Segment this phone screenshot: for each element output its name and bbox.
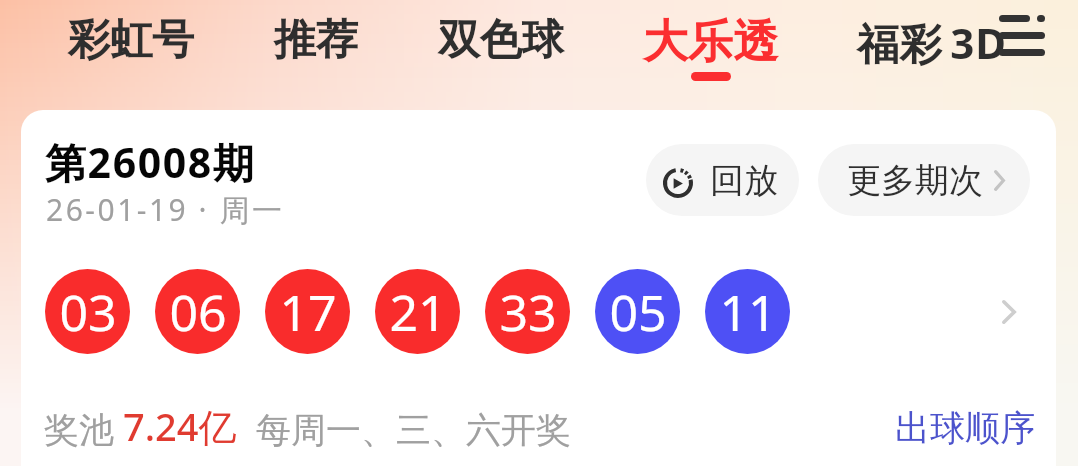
button[interactable]: 双色球 xyxy=(428,12,574,69)
staticText: 26-01-19 · 周一 xyxy=(46,189,285,230)
button[interactable]: More details xyxy=(979,270,1039,354)
staticText: 福彩 3D xyxy=(857,14,1007,71)
staticText: 03 xyxy=(59,278,117,346)
staticText: 奖池 xyxy=(44,408,114,452)
staticText: 05 xyxy=(609,278,667,346)
staticText: 06 xyxy=(169,278,227,346)
staticText: 更多期次 xyxy=(847,159,983,202)
staticText: 推荐 xyxy=(274,14,358,67)
staticText: 33 xyxy=(499,278,557,346)
staticText: 17 xyxy=(279,278,337,346)
staticText: 大乐透 xyxy=(643,14,778,71)
staticText: 每周一、三、六开奖 xyxy=(256,408,571,452)
button[interactable]: 推荐 xyxy=(264,12,368,69)
button[interactable]: 彩虹号 xyxy=(58,12,204,69)
button[interactable]: 出球顺序 xyxy=(881,396,1049,460)
button[interactable]: 更多期次 xyxy=(818,144,1030,216)
button[interactable]: 福彩 3D xyxy=(847,12,1017,73)
staticText: 11 xyxy=(719,278,777,346)
staticText: 出球顺序 xyxy=(895,406,1035,450)
button[interactable]: 回放 xyxy=(646,144,799,216)
button[interactable]: Menu xyxy=(984,5,1060,65)
button[interactable]: 大乐透 xyxy=(633,12,788,83)
staticText: 回放 xyxy=(710,159,778,202)
staticText: 彩虹号 xyxy=(68,14,194,67)
staticText: 第26008期 xyxy=(45,134,256,190)
staticText: 7.24亿 xyxy=(123,400,237,452)
staticText: 21 xyxy=(389,278,447,346)
staticText: 双色球 xyxy=(438,14,564,67)
